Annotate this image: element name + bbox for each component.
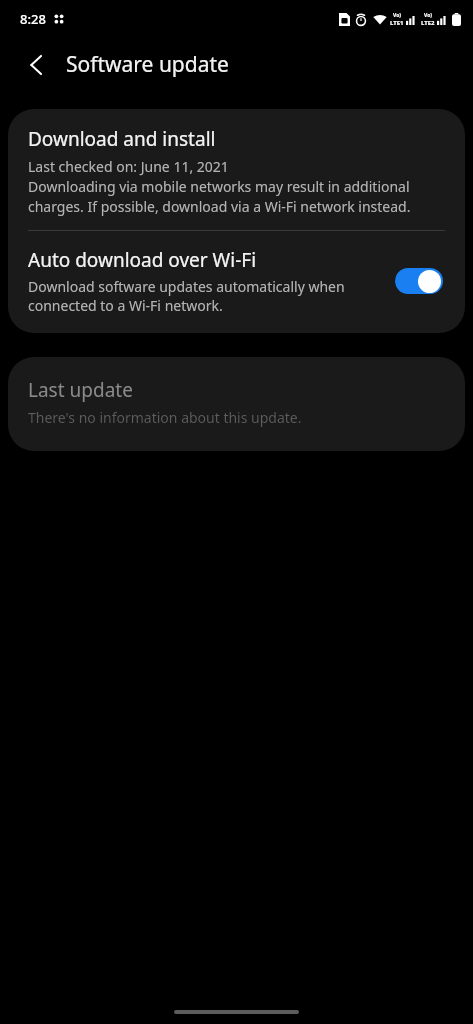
staticText: Vo) [424,12,432,19]
staticText: Download and install [28,126,216,152]
staticText: Software update [66,50,229,79]
staticText: Last update [28,377,133,403]
button[interactable]: Download and install [8,109,465,230]
staticText: Vo) [393,12,401,19]
button[interactable]: Last update [8,357,465,451]
staticText: Last checked on: June 11, 2021 Downloadi… [28,157,445,216]
button[interactable]: Auto download over Wi-Fi [8,231,465,333]
staticText: 8:28 [20,10,46,28]
button[interactable]: Back [14,43,58,87]
staticText: LTE2 [421,19,435,27]
staticText: LTE1 [390,19,404,27]
staticText: Auto download over Wi-Fi [28,247,257,273]
button[interactable]: Auto download over Wi-Fi toggle [395,266,447,296]
staticText: There's no information about this update… [28,408,302,427]
staticText: Download software updates automatically … [28,277,383,315]
